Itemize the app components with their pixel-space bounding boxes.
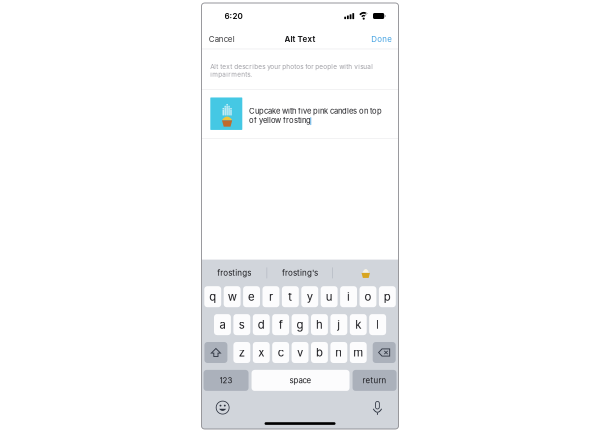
staticText: d [258, 318, 265, 331]
staticText: o [364, 290, 371, 303]
staticText: c [278, 346, 284, 359]
staticText: u [326, 290, 333, 303]
staticText: f [279, 318, 283, 331]
button[interactable]: s [233, 314, 250, 335]
button[interactable]: p [379, 286, 396, 307]
button[interactable]: z [233, 342, 250, 363]
staticText: z [239, 346, 245, 359]
staticText: e [248, 290, 255, 303]
staticText: m [353, 346, 363, 359]
button[interactable]: Cupcake emoji [333, 260, 399, 286]
button[interactable]: Shift [204, 342, 227, 363]
staticText: Cupcake with five pink candles on top of… [249, 106, 382, 125]
button[interactable]: m [350, 342, 367, 363]
staticText: 123 [220, 376, 233, 385]
staticText: j [337, 318, 340, 331]
button[interactable]: v [292, 342, 308, 363]
staticText: a [219, 318, 225, 331]
button[interactable]: k [350, 314, 367, 335]
button[interactable]: space [252, 370, 350, 391]
button[interactable]: Emoji keyboard [212, 397, 233, 418]
button[interactable]: q [204, 286, 221, 307]
staticText: r [269, 290, 273, 303]
staticText: s [239, 318, 245, 331]
button[interactable]: Cancel [208, 29, 236, 49]
button[interactable]: 123 [204, 370, 249, 391]
staticText: return [363, 376, 387, 385]
staticText: p [384, 290, 391, 303]
button[interactable]: h [311, 314, 328, 335]
button[interactable]: frostings [201, 260, 267, 286]
button[interactable]: return [353, 370, 397, 391]
button[interactable]: d [253, 314, 270, 335]
staticText: v [297, 346, 303, 359]
button[interactable]: o [359, 286, 376, 307]
button[interactable]: Delete [373, 342, 396, 363]
button[interactable]: a [214, 314, 231, 335]
staticText: 6:20 [224, 11, 242, 21]
staticText: frosting's [282, 268, 318, 278]
staticText: Cancel [209, 34, 235, 44]
staticText: k [355, 318, 361, 331]
staticText: Alt text describes your photos for peopl… [210, 63, 373, 78]
staticText: q [209, 290, 216, 303]
button[interactable]: j [330, 314, 347, 335]
staticText: space [290, 376, 312, 385]
button[interactable]: l [369, 314, 386, 335]
staticText: h [316, 318, 323, 331]
button[interactable]: x [253, 342, 270, 363]
button[interactable]: r [262, 286, 279, 307]
staticText: l [376, 318, 379, 331]
staticText: t [288, 290, 292, 303]
staticText: y [307, 290, 313, 303]
staticText: g [297, 318, 304, 331]
button[interactable]: Done [370, 29, 393, 49]
button[interactable]: e [243, 286, 260, 307]
staticText: i [347, 290, 350, 303]
staticText: Done [371, 34, 392, 44]
staticText: b [316, 346, 323, 359]
button[interactable]: Dictation [367, 397, 388, 418]
button[interactable]: n [330, 342, 347, 363]
staticText: n [335, 346, 342, 359]
button[interactable]: g [292, 314, 308, 335]
button[interactable]: frosting's [267, 260, 333, 286]
staticText: frostings [217, 268, 251, 278]
button[interactable]: b [311, 342, 328, 363]
staticText: Alt Text [284, 34, 315, 44]
button[interactable]: w [224, 286, 241, 307]
button[interactable]: f [272, 314, 289, 335]
button[interactable]: t [282, 286, 299, 307]
staticText: w [228, 290, 237, 303]
button[interactable]: i [340, 286, 357, 307]
button[interactable]: u [321, 286, 338, 307]
staticText: x [258, 346, 264, 359]
button[interactable]: y [301, 286, 318, 307]
button[interactable]: c [272, 342, 289, 363]
